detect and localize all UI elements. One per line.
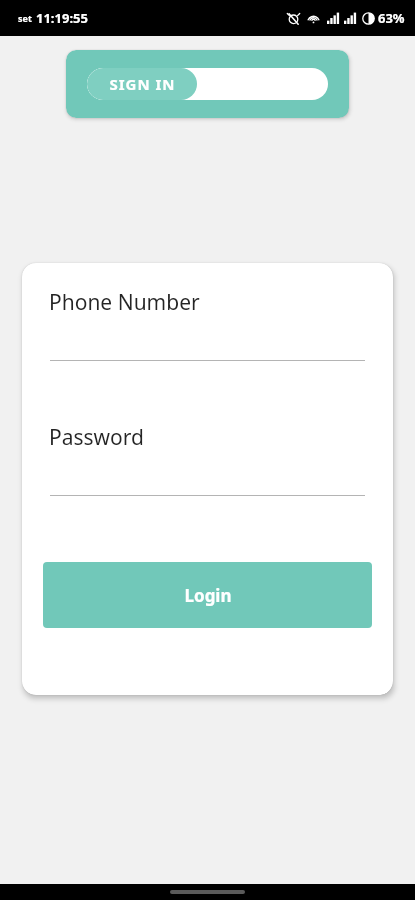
- button[interactable]: Sign up: [197, 68, 328, 100]
- staticText: 63%: [378, 9, 405, 27]
- staticText: set: [18, 12, 32, 24]
- button[interactable]: Password: [49, 423, 366, 452]
- button[interactable]: Login: [43, 562, 372, 628]
- button[interactable]: Phone Number: [49, 288, 366, 317]
- button[interactable]: SIGN IN: [87, 68, 197, 100]
- staticText: Login: [184, 584, 232, 607]
- other: Home gesture: [170, 890, 245, 894]
- staticText: Password: [49, 423, 144, 452]
- staticText: 11:19:55: [36, 9, 88, 27]
- staticText: Phone Number: [49, 288, 200, 317]
- staticText: SIGN IN: [109, 74, 176, 94]
